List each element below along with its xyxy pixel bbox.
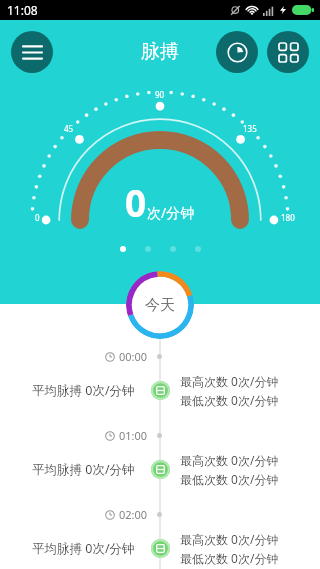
staticText: 90: [155, 89, 165, 100]
staticText: 平均脉搏 0次/分钟: [32, 382, 135, 399]
staticText: 11:08: [7, 2, 38, 18]
button[interactable]: 平均脉搏 0次/分钟: [0, 451, 320, 487]
staticText: 0: [125, 177, 147, 227]
staticText: 0: [35, 212, 40, 223]
staticText: 平均脉搏 0次/分钟: [32, 461, 135, 478]
button[interactable]: 平均脉搏 0次/分钟: [0, 530, 320, 566]
button[interactable]: 平均脉搏 0次/分钟: [0, 372, 320, 408]
staticText: 脉搏: [141, 40, 179, 64]
staticText: 次/分钟: [147, 203, 195, 222]
button[interactable]: Statistics: [216, 31, 258, 73]
button[interactable]: Menu: [11, 31, 53, 73]
staticText: 平均脉搏 0次/分钟: [32, 540, 135, 557]
staticText: 135: [243, 123, 257, 134]
staticText: 180: [281, 212, 295, 223]
staticText: 最高次数 0次/分钟: [180, 373, 279, 389]
staticText: 45: [64, 123, 74, 134]
staticText: 今天: [145, 296, 175, 315]
staticText: 最高次数 0次/分钟: [180, 531, 279, 547]
staticText: 最高次数 0次/分钟: [180, 452, 279, 468]
staticText: 最低次数 0次/分钟: [180, 471, 279, 487]
staticText: 00:00: [119, 349, 148, 364]
staticText: 最低次数 0次/分钟: [180, 392, 279, 408]
staticText: 最低次数 0次/分钟: [180, 550, 279, 566]
button[interactable]: Apps grid: [267, 31, 309, 73]
staticText: 02:00: [119, 507, 148, 522]
staticText: 01:00: [119, 428, 148, 443]
button[interactable]: 今天: [126, 271, 194, 339]
